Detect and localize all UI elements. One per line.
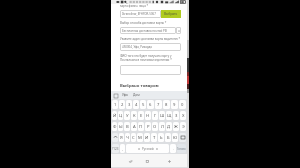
staticText: Я xyxy=(120,135,123,141)
staticText: Щ xyxy=(167,113,172,119)
button[interactable]: 2 xyxy=(119,100,125,109)
button[interactable]: Х xyxy=(180,111,186,120)
button[interactable]: Ф xyxy=(112,122,117,131)
button[interactable]: Б xyxy=(165,133,171,142)
button[interactable]: 4 xyxy=(133,100,139,109)
staticText: Укажите адрес доставки карты водителю * xyxy=(120,37,181,41)
button[interactable]: Ь xyxy=(158,133,164,142)
button[interactable] xyxy=(120,65,181,75)
staticText: ФИО того кто будет получать карту у Почт… xyxy=(120,54,172,62)
button[interactable]: Главный экран xyxy=(143,157,151,165)
button[interactable]: Бесплатная доставка почтой РФ xyxy=(120,27,176,34)
button[interactable]: 9 xyxy=(171,100,178,109)
button[interactable]: 0 xyxy=(179,100,186,109)
button[interactable]: 5 xyxy=(140,100,146,109)
button[interactable]: Ж xyxy=(173,122,179,131)
button[interactable]: ?123 xyxy=(112,144,119,153)
button[interactable]: Е xyxy=(138,111,144,120)
staticText: Б xyxy=(167,135,170,141)
button[interactable]: Shift xyxy=(112,133,118,142)
button[interactable]: Назад xyxy=(126,157,134,165)
button[interactable]: П xyxy=(138,122,144,131)
button[interactable]: К xyxy=(131,111,137,120)
staticText: Ф xyxy=(113,124,117,130)
staticText: Л xyxy=(161,124,164,130)
button[interactable]: Выбрать xyxy=(176,27,181,34)
button[interactable]: 8 xyxy=(163,100,170,109)
button[interactable]: Ч xyxy=(125,133,130,142)
staticText: Д xyxy=(167,124,171,130)
button[interactable]: С xyxy=(131,133,136,142)
button[interactable]: Backspace xyxy=(179,133,186,142)
staticText: М xyxy=(138,135,142,141)
button[interactable]: Готово xyxy=(177,144,186,153)
staticText: , xyxy=(122,147,123,151)
button[interactable]: Дом xyxy=(133,93,140,97)
staticText: Р xyxy=(147,124,150,130)
button[interactable]: Т xyxy=(151,133,157,142)
button[interactable]: Ы xyxy=(118,122,123,131)
button[interactable]: Д xyxy=(166,122,172,131)
staticText: Ы xyxy=(119,124,123,130)
button[interactable]: 1 xyxy=(112,100,118,109)
staticText: 1 xyxy=(114,102,117,108)
staticText: К xyxy=(133,113,136,119)
staticText: 0 xyxy=(181,102,184,108)
button[interactable]: Н xyxy=(145,111,151,120)
staticText: 450004, Уфа, Рихарда xyxy=(122,45,152,49)
staticText: Х xyxy=(182,113,185,119)
staticText: Ю xyxy=(173,135,178,141)
button[interactable]: М xyxy=(137,133,143,142)
button[interactable]: О xyxy=(152,122,158,131)
button[interactable]: Настройки xyxy=(113,93,118,98)
staticText: Ь xyxy=(160,135,163,141)
button[interactable]: Щ xyxy=(166,111,172,120)
button[interactable]: Уфа xyxy=(122,93,128,97)
button[interactable]: . xyxy=(170,144,176,153)
staticText: Ц xyxy=(119,113,123,119)
button[interactable]: И xyxy=(144,133,150,142)
button[interactable]: 3 xyxy=(126,100,132,109)
staticText: Ч xyxy=(126,135,129,141)
button[interactable]: З xyxy=(173,111,179,120)
button[interactable]: 6 xyxy=(147,100,154,109)
button[interactable]: Русский xyxy=(126,144,169,153)
button[interactable]: , xyxy=(120,144,125,153)
button[interactable]: Ш xyxy=(159,111,165,120)
button[interactable]: Э xyxy=(180,122,186,131)
button[interactable]: Й xyxy=(112,111,117,120)
staticText: Выбрано товаров: xyxy=(120,83,160,89)
button[interactable]: Ц xyxy=(118,111,123,120)
staticText: 2 xyxy=(121,102,124,108)
staticText: У xyxy=(126,113,129,119)
staticText: 9 xyxy=(173,102,176,108)
staticText: 6 xyxy=(149,102,152,108)
staticText: О xyxy=(153,124,157,130)
button[interactable]: Г xyxy=(152,111,158,120)
staticText: Г xyxy=(154,113,157,119)
staticText: 7 xyxy=(157,102,160,108)
button[interactable]: А xyxy=(131,122,137,131)
staticText: ?123 xyxy=(112,147,119,151)
staticText: А xyxy=(133,124,136,130)
button[interactable]: Я xyxy=(119,133,124,142)
button[interactable]: 7 xyxy=(155,100,162,109)
button[interactable]: Л xyxy=(159,122,165,131)
staticText: С xyxy=(132,135,135,141)
button[interactable]: 450004, Уфа, Рихарда xyxy=(120,43,181,51)
staticText: В xyxy=(126,124,129,130)
staticText: Выбрать xyxy=(164,12,178,16)
staticText: 5 xyxy=(142,102,145,108)
button[interactable]: Ю xyxy=(172,133,178,142)
staticText: Ж xyxy=(174,124,178,130)
staticText: . xyxy=(173,147,174,151)
staticText: Н xyxy=(146,113,150,119)
staticText: Й xyxy=(113,113,117,119)
staticText: Готово xyxy=(177,147,186,151)
button[interactable]: Недавние xyxy=(165,157,173,165)
button[interactable]: В xyxy=(124,122,130,131)
button[interactable]: Выбрать xyxy=(161,10,181,18)
button[interactable]: Ikranolinw_EFHFDR-5067 xyxy=(120,10,161,18)
button[interactable]: У xyxy=(124,111,130,120)
button[interactable]: Р xyxy=(145,122,151,131)
